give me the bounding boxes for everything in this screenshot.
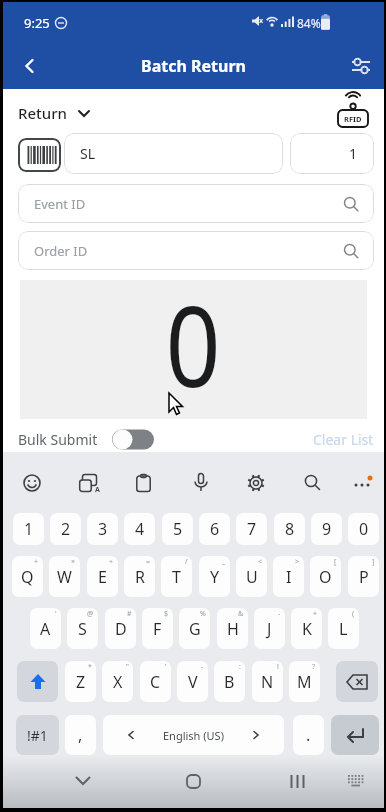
button[interactable]: SL xyxy=(64,133,283,174)
staticText: ] xyxy=(372,557,375,567)
button[interactable]: E xyxy=(87,556,118,597)
button[interactable]: Event ID xyxy=(18,184,374,223)
staticText: SL xyxy=(80,144,96,163)
button[interactable]: 1 xyxy=(290,133,374,174)
button[interactable]: 6 xyxy=(199,513,230,545)
button[interactable]: I xyxy=(273,556,304,597)
button[interactable] xyxy=(129,468,158,497)
button[interactable] xyxy=(175,766,211,796)
button[interactable]: B xyxy=(214,661,245,702)
staticText: 5 xyxy=(173,518,183,540)
button[interactable]: Clear List xyxy=(308,426,374,452)
staticText: E xyxy=(98,566,107,588)
button[interactable] xyxy=(348,468,377,497)
staticText: Z xyxy=(76,671,86,693)
staticText: % xyxy=(200,609,206,619)
staticText: 1 xyxy=(349,144,358,163)
button[interactable]: S xyxy=(67,608,98,649)
button[interactable]: 7 xyxy=(236,513,267,545)
staticText: 9 xyxy=(322,518,332,540)
staticText: Order ID xyxy=(34,242,88,260)
button[interactable]: K xyxy=(291,608,322,649)
staticText: 3 xyxy=(98,518,108,540)
button[interactable]: 2 xyxy=(50,513,81,545)
button[interactable]: F xyxy=(142,608,173,649)
button[interactable]: 8 xyxy=(274,513,305,545)
staticText: 9:25 xyxy=(24,14,50,32)
staticText: < xyxy=(258,557,263,567)
button[interactable]: , xyxy=(65,715,96,755)
button[interactable]: Order ID xyxy=(18,231,374,270)
button[interactable]: J xyxy=(254,608,285,649)
button[interactable]: U xyxy=(236,556,267,597)
button[interactable] xyxy=(11,47,49,85)
button[interactable] xyxy=(17,661,58,702)
button[interactable] xyxy=(241,468,270,497)
button[interactable] xyxy=(17,468,46,497)
staticText: Return xyxy=(18,103,67,123)
staticText: R xyxy=(135,566,145,588)
staticText: * xyxy=(88,662,92,672)
button[interactable]: N xyxy=(252,661,283,702)
button[interactable]: R xyxy=(124,556,155,597)
button[interactable]: A xyxy=(30,608,61,649)
button[interactable]: English (US) xyxy=(103,715,284,755)
button[interactable]: C xyxy=(140,661,171,702)
staticText: X xyxy=(113,671,123,693)
staticText: S xyxy=(78,618,87,640)
button[interactable] xyxy=(298,468,327,497)
button[interactable]: Z xyxy=(65,661,96,702)
button[interactable]: D xyxy=(105,608,136,649)
staticText: - xyxy=(201,662,204,672)
button[interactable]: Q xyxy=(12,556,43,597)
button[interactable]: Return xyxy=(18,98,91,128)
button[interactable]: W xyxy=(49,556,80,597)
button[interactable]: 9 xyxy=(311,513,342,545)
staticText: & xyxy=(238,609,244,619)
button[interactable]: P xyxy=(348,556,379,597)
button[interactable] xyxy=(186,468,215,497)
staticText: 4 xyxy=(135,518,145,540)
button[interactable]: 3 xyxy=(87,513,118,545)
button[interactable]: A xyxy=(73,468,102,497)
staticText: O xyxy=(319,566,332,588)
button[interactable]: !#1 xyxy=(16,715,59,755)
button[interactable]: O xyxy=(310,556,341,597)
button[interactable]: RFID xyxy=(336,91,372,129)
button[interactable]: V xyxy=(177,661,208,702)
staticText: H xyxy=(227,618,239,640)
staticText: × xyxy=(71,557,76,567)
button[interactable] xyxy=(18,138,61,172)
staticText: : xyxy=(239,662,241,672)
staticText: J xyxy=(267,618,272,640)
button[interactable]: Y xyxy=(199,556,230,597)
staticText: ' xyxy=(55,609,57,619)
button[interactable]: 5 xyxy=(162,513,193,545)
staticText: Q xyxy=(21,566,34,588)
button[interactable]: G xyxy=(179,608,210,649)
button[interactable] xyxy=(65,766,101,796)
staticText: - xyxy=(278,609,281,619)
button[interactable]: . xyxy=(293,715,324,755)
button[interactable] xyxy=(336,661,378,702)
button[interactable]: T xyxy=(161,556,192,597)
button[interactable]: Bulk Submit xyxy=(18,426,154,452)
button[interactable] xyxy=(331,715,379,755)
button[interactable]: 1 xyxy=(13,513,44,545)
button[interactable]: L xyxy=(328,608,359,649)
staticText: + xyxy=(34,557,39,567)
button[interactable]: X xyxy=(102,661,133,702)
button[interactable]: 4 xyxy=(124,513,155,545)
staticText: [ xyxy=(334,557,337,567)
staticText: , xyxy=(78,724,83,746)
staticText: Bulk Submit xyxy=(18,430,98,449)
button[interactable] xyxy=(341,768,371,794)
staticText: = xyxy=(146,557,151,567)
staticText: N xyxy=(261,671,274,693)
button[interactable] xyxy=(341,46,381,86)
button[interactable]: M xyxy=(289,661,320,702)
staticText: B xyxy=(224,671,235,693)
button[interactable] xyxy=(279,766,315,796)
button[interactable]: H xyxy=(217,608,248,649)
button[interactable]: 0 xyxy=(348,513,379,545)
